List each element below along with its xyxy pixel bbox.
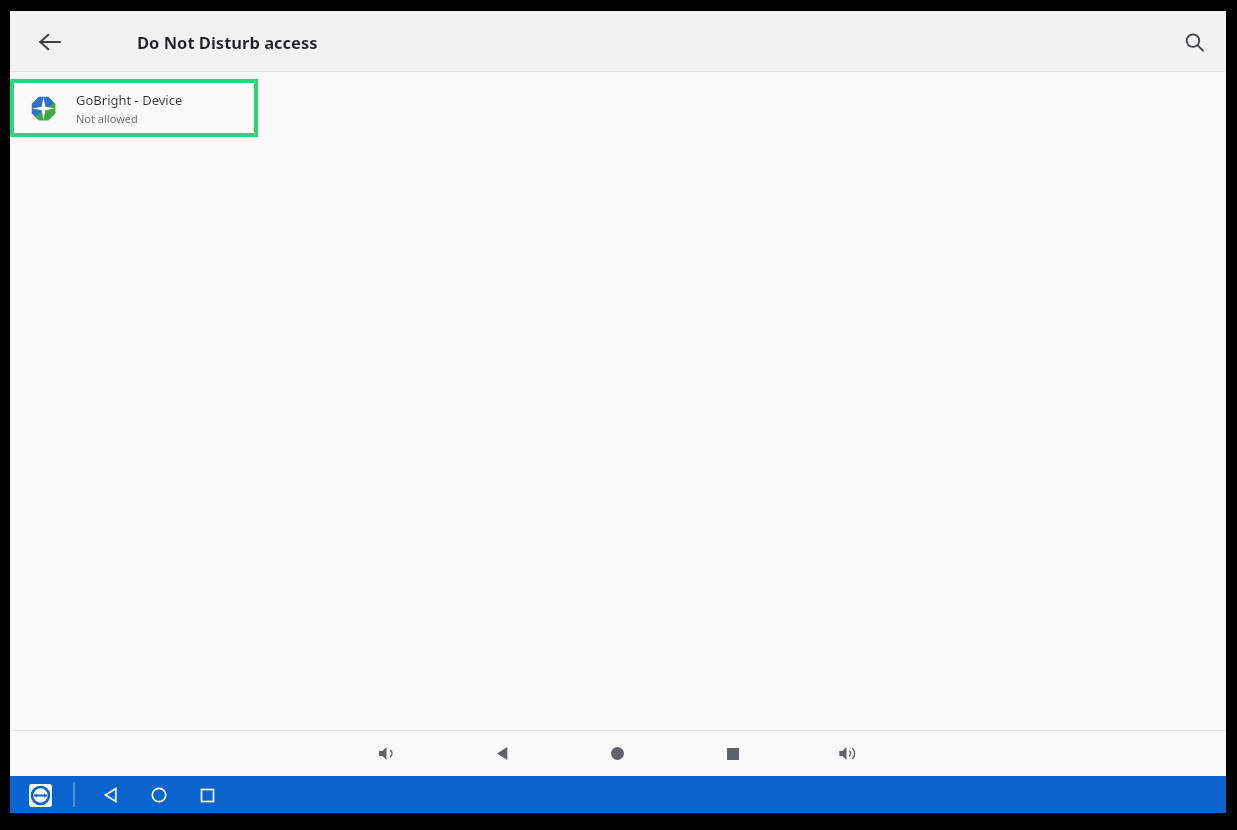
staticText: Do Not Disturb access	[137, 31, 318, 53]
button[interactable]: Back	[96, 780, 126, 810]
button[interactable]: TeamViewer QuickSupport	[27, 782, 53, 808]
button[interactable]: Recents	[714, 735, 751, 772]
button[interactable]: Home	[144, 780, 174, 810]
button[interactable]: Home	[599, 735, 636, 772]
staticText: GoBright - Device	[76, 91, 183, 109]
button[interactable]: Search	[1168, 16, 1220, 68]
button[interactable]: Volume down	[368, 735, 405, 772]
button[interactable]: Volume up	[829, 735, 866, 772]
staticText: Not allowed	[76, 111, 138, 126]
button[interactable]: Back	[484, 735, 521, 772]
button[interactable]: Back	[24, 16, 76, 68]
button[interactable]: Recents	[192, 780, 222, 810]
button[interactable]: GoBright - Device	[10, 79, 258, 137]
